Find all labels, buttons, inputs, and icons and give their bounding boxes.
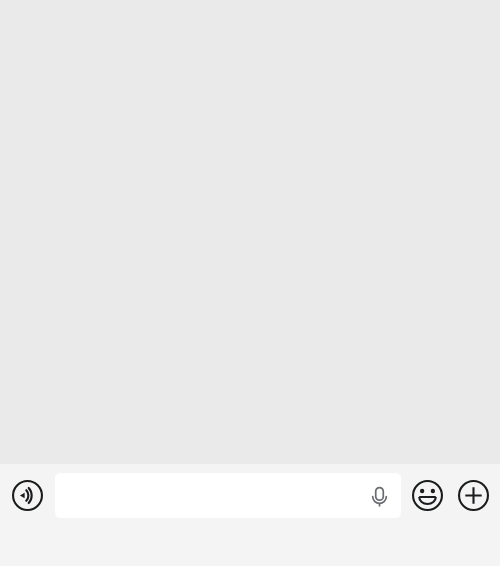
button[interactable]: Choose emoji	[407, 476, 447, 516]
button[interactable]: Voice input	[366, 483, 392, 509]
button[interactable]: Text message	[55, 473, 401, 518]
button[interactable]: Send voice message	[7, 476, 47, 516]
button[interactable]: Add attachment	[453, 476, 493, 516]
